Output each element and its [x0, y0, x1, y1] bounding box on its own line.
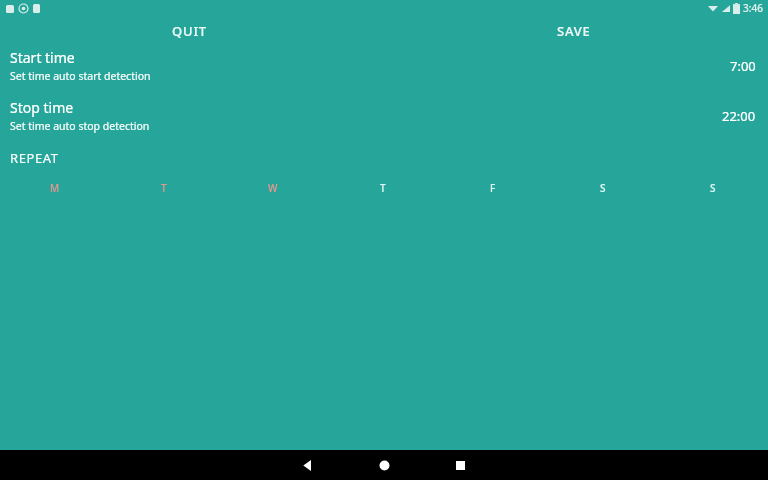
staticText: 3:46 — [743, 1, 763, 15]
button[interactable]: QUIT — [160, 17, 219, 45]
staticText: M — [50, 181, 60, 195]
staticText: SAVE — [557, 22, 591, 40]
button[interactable]: S — [658, 178, 768, 198]
staticText: 22:00 — [722, 107, 756, 125]
staticText: REPEAT — [10, 149, 59, 167]
button[interactable]: M — [0, 178, 109, 198]
staticText: Stop time — [10, 98, 74, 117]
staticText: Set time auto start detection — [10, 69, 151, 83]
staticText: 7:00 — [730, 57, 756, 75]
button[interactable]: F — [438, 178, 548, 198]
button[interactable]: S — [548, 178, 658, 198]
button[interactable]: Back — [295, 453, 319, 477]
staticText: F — [490, 181, 496, 195]
staticText: T — [380, 181, 386, 195]
button[interactable]: T — [328, 178, 438, 198]
button[interactable]: Home — [372, 453, 396, 477]
button[interactable]: Recent apps — [448, 453, 472, 477]
button[interactable]: Start time — [0, 46, 768, 85]
staticText: W — [268, 181, 278, 195]
staticText: S — [600, 181, 606, 195]
staticText: Start time — [10, 48, 75, 67]
staticText: S — [710, 181, 716, 195]
staticText: QUIT — [172, 22, 207, 40]
staticText: T — [161, 181, 167, 195]
button[interactable]: W — [218, 178, 328, 198]
button[interactable]: SAVE — [545, 17, 603, 45]
button[interactable]: T — [109, 178, 218, 198]
button[interactable]: Stop time — [0, 96, 768, 135]
staticText: Set time auto stop detection — [10, 119, 150, 133]
